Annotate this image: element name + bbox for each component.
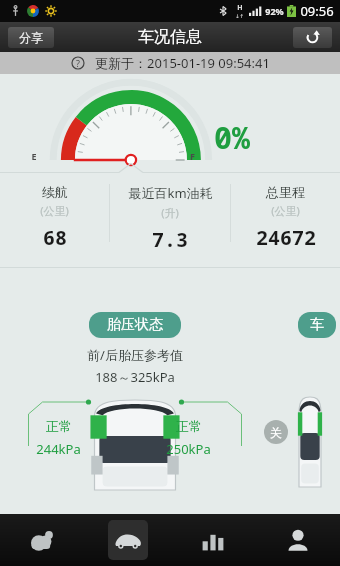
button[interactable]: 车 — [298, 312, 336, 338]
staticText: F — [190, 150, 195, 162]
staticText: 关 — [270, 425, 282, 440]
button[interactable]: 总里程 — [231, 184, 340, 251]
staticText: (升) — [161, 205, 179, 220]
staticText: 总里程 — [266, 184, 305, 200]
staticText: 续航 — [42, 184, 68, 200]
button[interactable]: 我的 — [255, 514, 340, 566]
button[interactable]: 刷新 — [293, 27, 332, 48]
staticText: 7.3 — [152, 226, 188, 253]
button[interactable]: 续航 — [0, 184, 109, 251]
staticText: ↓↑ — [235, 13, 244, 19]
staticText: 正常 — [176, 418, 202, 434]
staticText: H — [237, 3, 243, 13]
staticText: 前/后胎压参考值 — [87, 346, 183, 364]
staticText: 244kPa — [36, 440, 81, 458]
button[interactable]: 帮助 — [71, 56, 85, 70]
staticText: 胎压状态 — [107, 316, 163, 334]
button[interactable]: 车况 — [85, 514, 170, 566]
staticText: 68 — [43, 224, 67, 251]
staticText: 09:56 — [300, 2, 334, 20]
staticText: (公里) — [271, 203, 300, 218]
staticText: 车况信息 — [138, 27, 202, 47]
button[interactable]: 胎压状态 — [89, 312, 181, 338]
button[interactable]: 天气 — [0, 514, 85, 566]
staticText: 车 — [310, 316, 324, 334]
button[interactable]: 分享 — [8, 27, 54, 48]
staticText: 0% — [214, 117, 250, 158]
staticText: (公里) — [40, 203, 69, 218]
button[interactable]: 关 — [264, 420, 288, 444]
staticText: 24672 — [256, 224, 316, 251]
button[interactable]: 最近百km油耗 — [110, 184, 230, 253]
button[interactable]: 统计 — [170, 514, 255, 566]
staticText: 最近百km油耗 — [128, 184, 213, 202]
staticText: 分享 — [19, 30, 43, 45]
staticText: 更新于：2015-01-19 09:54:41 — [95, 54, 270, 72]
staticText: 188～325kPa — [95, 368, 175, 386]
staticText: 92% — [265, 5, 284, 17]
staticText: ? — [76, 57, 80, 69]
staticText: E — [31, 150, 37, 162]
staticText: 250kPa — [166, 440, 211, 458]
staticText: 正常 — [46, 418, 72, 434]
